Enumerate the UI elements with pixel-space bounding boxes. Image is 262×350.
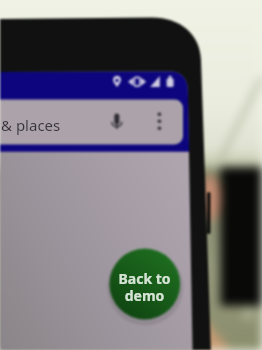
button[interactable]: Back to demo [109, 251, 180, 322]
button[interactable]: More options [149, 108, 171, 130]
staticText: Back to demo [118, 269, 171, 305]
staticText: & places [1, 115, 61, 135]
button[interactable]: & places [1, 115, 61, 135]
button[interactable]: Voice search [106, 108, 128, 130]
